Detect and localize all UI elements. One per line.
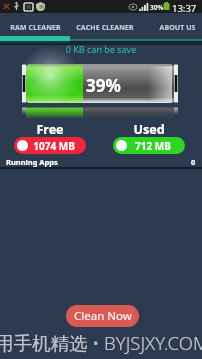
button[interactable]: CACHE CLEANER	[71, 17, 138, 39]
staticText: Used	[99, 121, 199, 138]
staticText: 712 MB	[127, 139, 179, 153]
staticText: CACHE CLEANER	[76, 23, 134, 33]
button[interactable]: ABOUT US	[145, 17, 202, 39]
staticText: 39%	[86, 74, 121, 97]
staticText: 1074 MB	[28, 139, 80, 153]
button[interactable]: 1074 MB	[14, 137, 86, 154]
staticText: 30%	[150, 3, 164, 12]
staticText: 用手机精选 • BYJSJXY.COM	[0, 330, 197, 355]
button[interactable]: 712 MB	[113, 137, 185, 154]
button[interactable]: Clean Now	[66, 305, 139, 327]
staticText: RAM CLEANER	[10, 23, 61, 33]
staticText: Clean Now	[74, 308, 132, 324]
staticText: Running Apps	[6, 157, 58, 167]
staticText: Free	[0, 121, 100, 138]
staticText: 0 KB can be save	[0, 43, 202, 55]
staticText: ABOUT US	[159, 23, 196, 33]
button[interactable]: RAM CLEANER	[0, 17, 71, 39]
staticText: 13:37	[172, 2, 197, 15]
staticText: 0	[191, 157, 196, 167]
